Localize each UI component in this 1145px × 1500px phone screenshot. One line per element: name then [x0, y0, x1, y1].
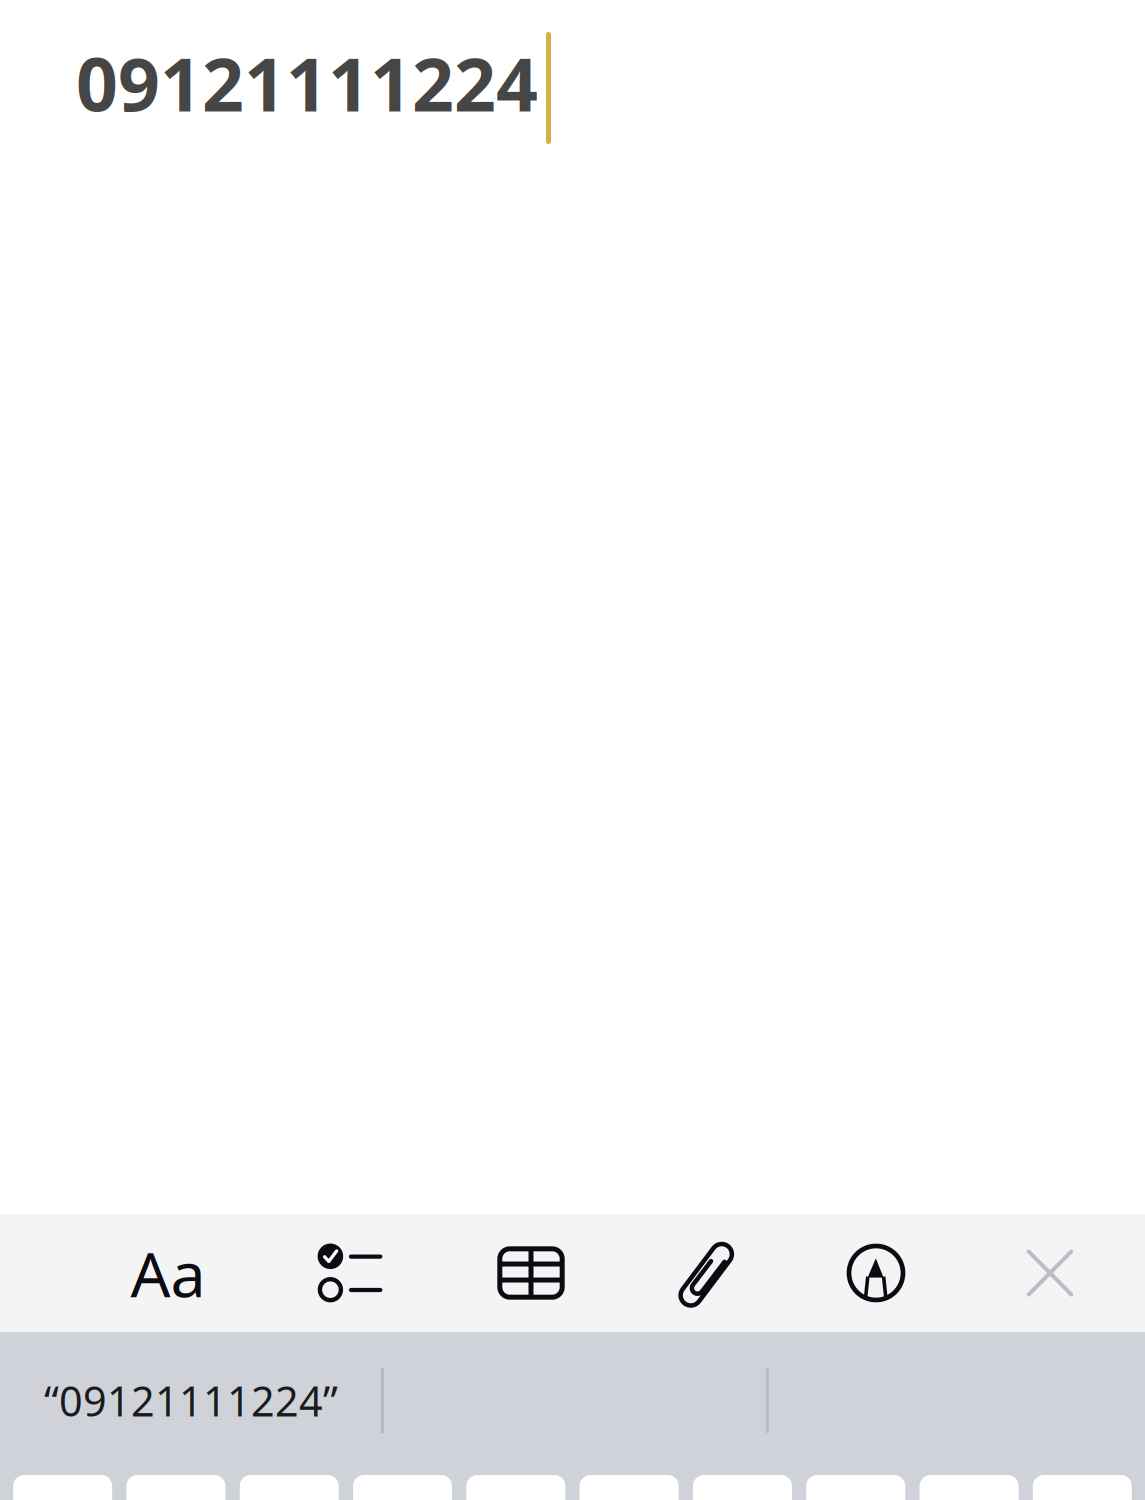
button[interactable]: Key	[459, 1475, 572, 1500]
staticText: 09121111224	[76, 34, 538, 132]
staticText: Aa	[130, 1231, 205, 1315]
button[interactable]: “09121111224”	[0, 1332, 381, 1469]
button[interactable]: Attach file	[663, 1230, 749, 1316]
button[interactable]: Key	[119, 1475, 233, 1500]
button[interactable]: Key	[686, 1475, 799, 1500]
button[interactable]: Format	[125, 1230, 211, 1316]
button[interactable]: Table	[488, 1230, 574, 1316]
button[interactable]: Close	[1007, 1230, 1093, 1316]
button[interactable]: Key	[572, 1475, 686, 1500]
button[interactable]: Key	[6, 1475, 119, 1500]
button[interactable]: Key	[799, 1475, 912, 1500]
button[interactable]: Key	[233, 1475, 346, 1500]
button[interactable]: 09121111224	[0, 0, 1145, 139]
staticText: “09121111224”	[44, 1373, 338, 1428]
button[interactable]: Key	[346, 1475, 459, 1500]
button[interactable]: Markup	[833, 1230, 919, 1316]
button[interactable]: Key	[1026, 1475, 1139, 1500]
button[interactable]: Checklist	[307, 1230, 393, 1316]
button[interactable]: Key	[912, 1475, 1026, 1500]
